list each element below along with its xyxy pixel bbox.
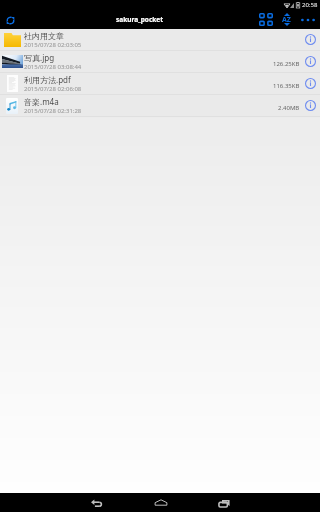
staticText: sakura_pocket: [116, 15, 164, 24]
staticText: 126.25KB: [273, 60, 300, 68]
staticText: 2015/07/28 02:03:05: [24, 41, 82, 49]
button[interactable]: Info: [300, 95, 320, 116]
button[interactable]: Info: [300, 73, 320, 94]
button[interactable]: Back: [66, 493, 129, 512]
button[interactable]: Sort: [277, 10, 296, 29]
button[interactable]: Refresh: [2, 12, 18, 28]
staticText: 20:58: [302, 1, 318, 9]
staticText: 2015/07/28 02:06:08: [24, 85, 82, 93]
button[interactable]: 利用方法.pdf: [0, 73, 320, 94]
button[interactable]: Home: [129, 493, 192, 512]
staticText: 2015/07/28 03:08:44: [24, 63, 82, 71]
button[interactable]: Info: [300, 29, 320, 50]
button[interactable]: 写真.jpg: [0, 51, 320, 72]
staticText: 社内用文章: [24, 31, 64, 41]
staticText: 写真.jpg: [24, 52, 55, 63]
button[interactable]: 社内用文章: [0, 29, 320, 50]
staticText: AZ: [282, 15, 291, 25]
button[interactable]: 音楽.m4a: [0, 95, 320, 116]
staticText: 116.35KB: [273, 82, 300, 90]
button[interactable]: Grid view: [254, 10, 277, 29]
staticText: 音楽.m4a: [24, 96, 59, 107]
button[interactable]: More options: [296, 10, 320, 29]
staticText: 2.40MB: [278, 104, 300, 112]
staticText: 利用方法.pdf: [24, 74, 71, 85]
button[interactable]: Info: [300, 51, 320, 72]
staticText: 2015/07/28 02:31:28: [24, 107, 82, 115]
button[interactable]: Recents: [192, 493, 255, 512]
